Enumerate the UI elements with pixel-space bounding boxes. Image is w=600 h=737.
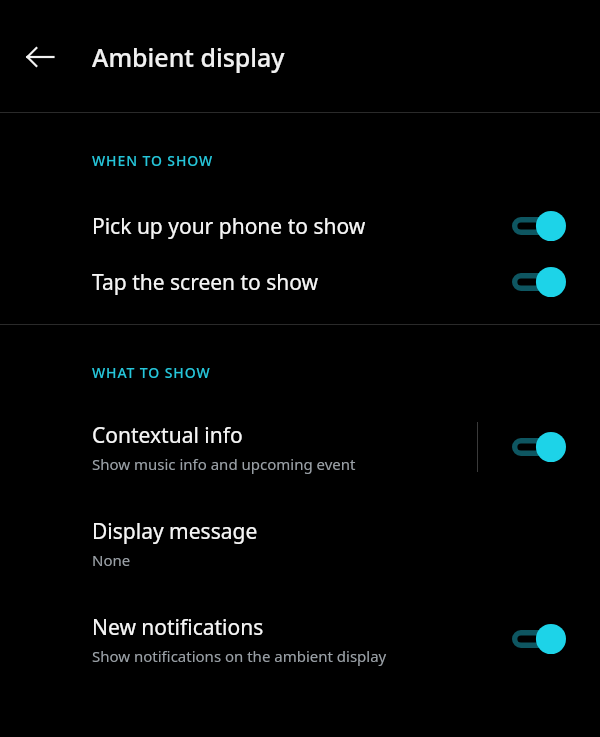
staticText: Pick up your phone to show — [92, 212, 366, 241]
button[interactable]: New notifications toggle — [478, 602, 600, 676]
button[interactable]: Back — [12, 29, 68, 85]
staticText: New notifications — [92, 613, 264, 642]
button[interactable]: Contextual info — [0, 410, 600, 484]
button[interactable]: Pick up your phone to show — [0, 198, 600, 254]
staticText: WHEN TO SHOW — [92, 151, 214, 170]
staticText: Contextual info — [92, 421, 243, 450]
button[interactable]: Pick up your phone to show toggle — [478, 198, 600, 254]
staticText: Display message — [92, 517, 258, 546]
button[interactable]: Tap the screen to show toggle — [478, 254, 600, 310]
staticText: None — [92, 550, 131, 570]
staticText: Tap the screen to show — [92, 268, 319, 297]
button[interactable]: Tap the screen to show — [0, 254, 600, 310]
staticText: Show music info and upcoming event — [92, 454, 356, 474]
button[interactable]: Display message — [0, 506, 600, 580]
staticText: Show notifications on the ambient displa… — [92, 646, 387, 666]
staticText: WHAT TO SHOW — [92, 363, 211, 382]
staticText: Ambient display — [92, 40, 285, 74]
button[interactable]: New notifications — [0, 602, 600, 676]
button[interactable]: Contextual info toggle — [478, 410, 600, 484]
